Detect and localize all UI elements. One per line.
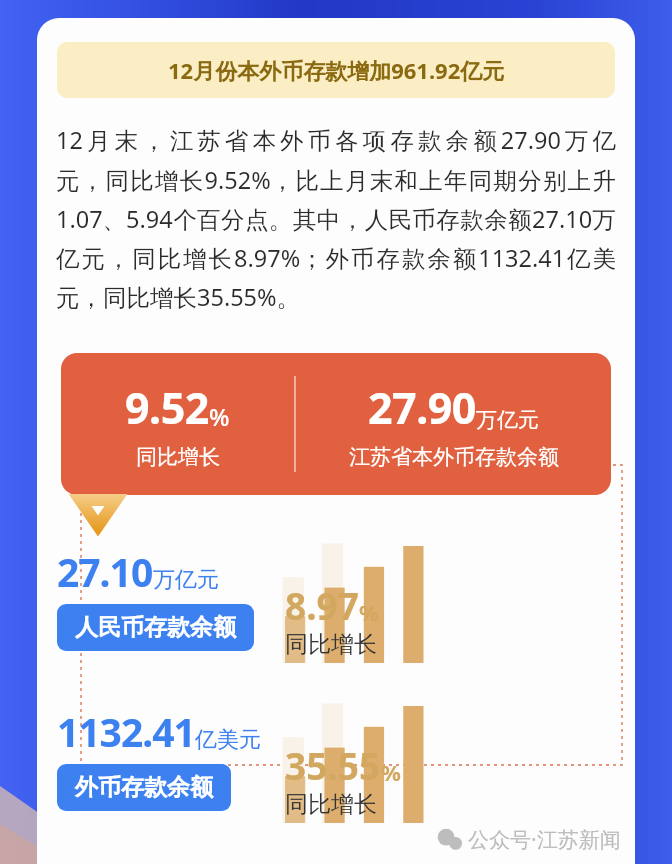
staticText: 江苏省本外币存款余额 [349, 444, 559, 470]
staticText: 同比增长 [136, 444, 220, 470]
staticText: 9.52 [125, 378, 209, 437]
staticText: 万亿元 [153, 566, 219, 594]
staticText: 1132.41 [57, 705, 195, 758]
staticText: 人民币存款余额 [75, 613, 236, 642]
staticText: 8.97 [285, 580, 359, 630]
staticText: 12月份本外币存款增加961.92亿元 [168, 55, 505, 85]
staticText: 亿美元 [195, 726, 261, 754]
staticText: 12月末，江苏省本外币各项存款余额27.90万亿元，同比增长9.52%，比上月末… [56, 124, 616, 313]
staticText: 万亿元 [476, 407, 539, 433]
staticText: 35.55 [285, 740, 381, 790]
button[interactable]: 人民币存款余额 [57, 604, 254, 651]
staticText: 27.10 [57, 545, 153, 598]
staticText: % [359, 597, 379, 627]
staticText: 27.90 [368, 378, 476, 437]
staticText: % [209, 400, 230, 433]
button[interactable]: 外币存款余额 [57, 764, 231, 811]
staticText: % [381, 757, 401, 787]
staticText: 外币存款余额 [75, 773, 213, 802]
staticText: 公众号·江苏新闻 [468, 825, 621, 854]
staticText: 同比增长 [285, 630, 377, 659]
button[interactable]: 12月份本外币存款增加961.92亿元 [57, 42, 615, 98]
staticText: 同比增长 [285, 790, 377, 819]
button[interactable]: 9.52 [61, 353, 611, 495]
